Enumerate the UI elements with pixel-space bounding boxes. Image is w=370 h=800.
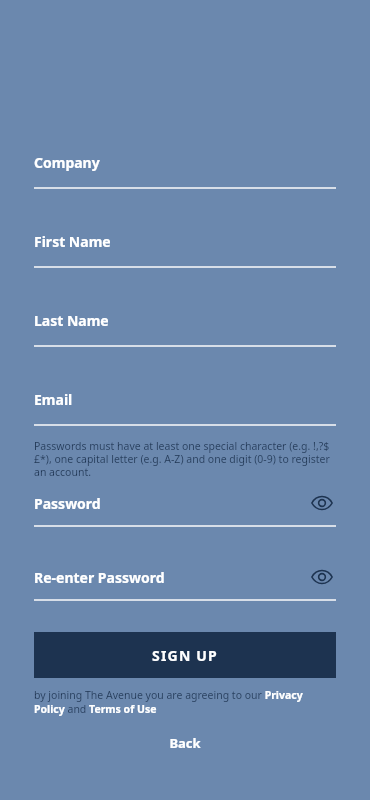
button[interactable]: Re-enter Password: [34, 563, 336, 591]
staticText: Back: [169, 734, 201, 752]
staticText: Password: [34, 494, 308, 513]
button[interactable]: First Name: [34, 232, 336, 251]
button[interactable]: Show password: [308, 489, 336, 517]
button[interactable]: Email: [34, 390, 336, 409]
button[interactable]: by joining The Avenue you are agreeing t…: [34, 688, 336, 716]
staticText: First Name: [34, 232, 336, 251]
button[interactable]: Show password: [308, 563, 336, 591]
staticText: Email: [34, 390, 336, 409]
button[interactable]: Last Name: [34, 311, 336, 330]
staticText: Company: [34, 153, 336, 172]
staticText: by joining The Avenue you are agreeing t…: [34, 688, 336, 716]
staticText: Re-enter Password: [34, 568, 308, 587]
button[interactable]: SIGN UP: [34, 632, 336, 678]
button[interactable]: Password: [34, 489, 336, 517]
staticText: Last Name: [34, 311, 336, 330]
button[interactable]: Company: [34, 153, 336, 172]
staticText: SIGN UP: [152, 646, 218, 665]
staticText: Passwords must have at least one special…: [34, 439, 336, 479]
button[interactable]: Back: [34, 734, 336, 752]
